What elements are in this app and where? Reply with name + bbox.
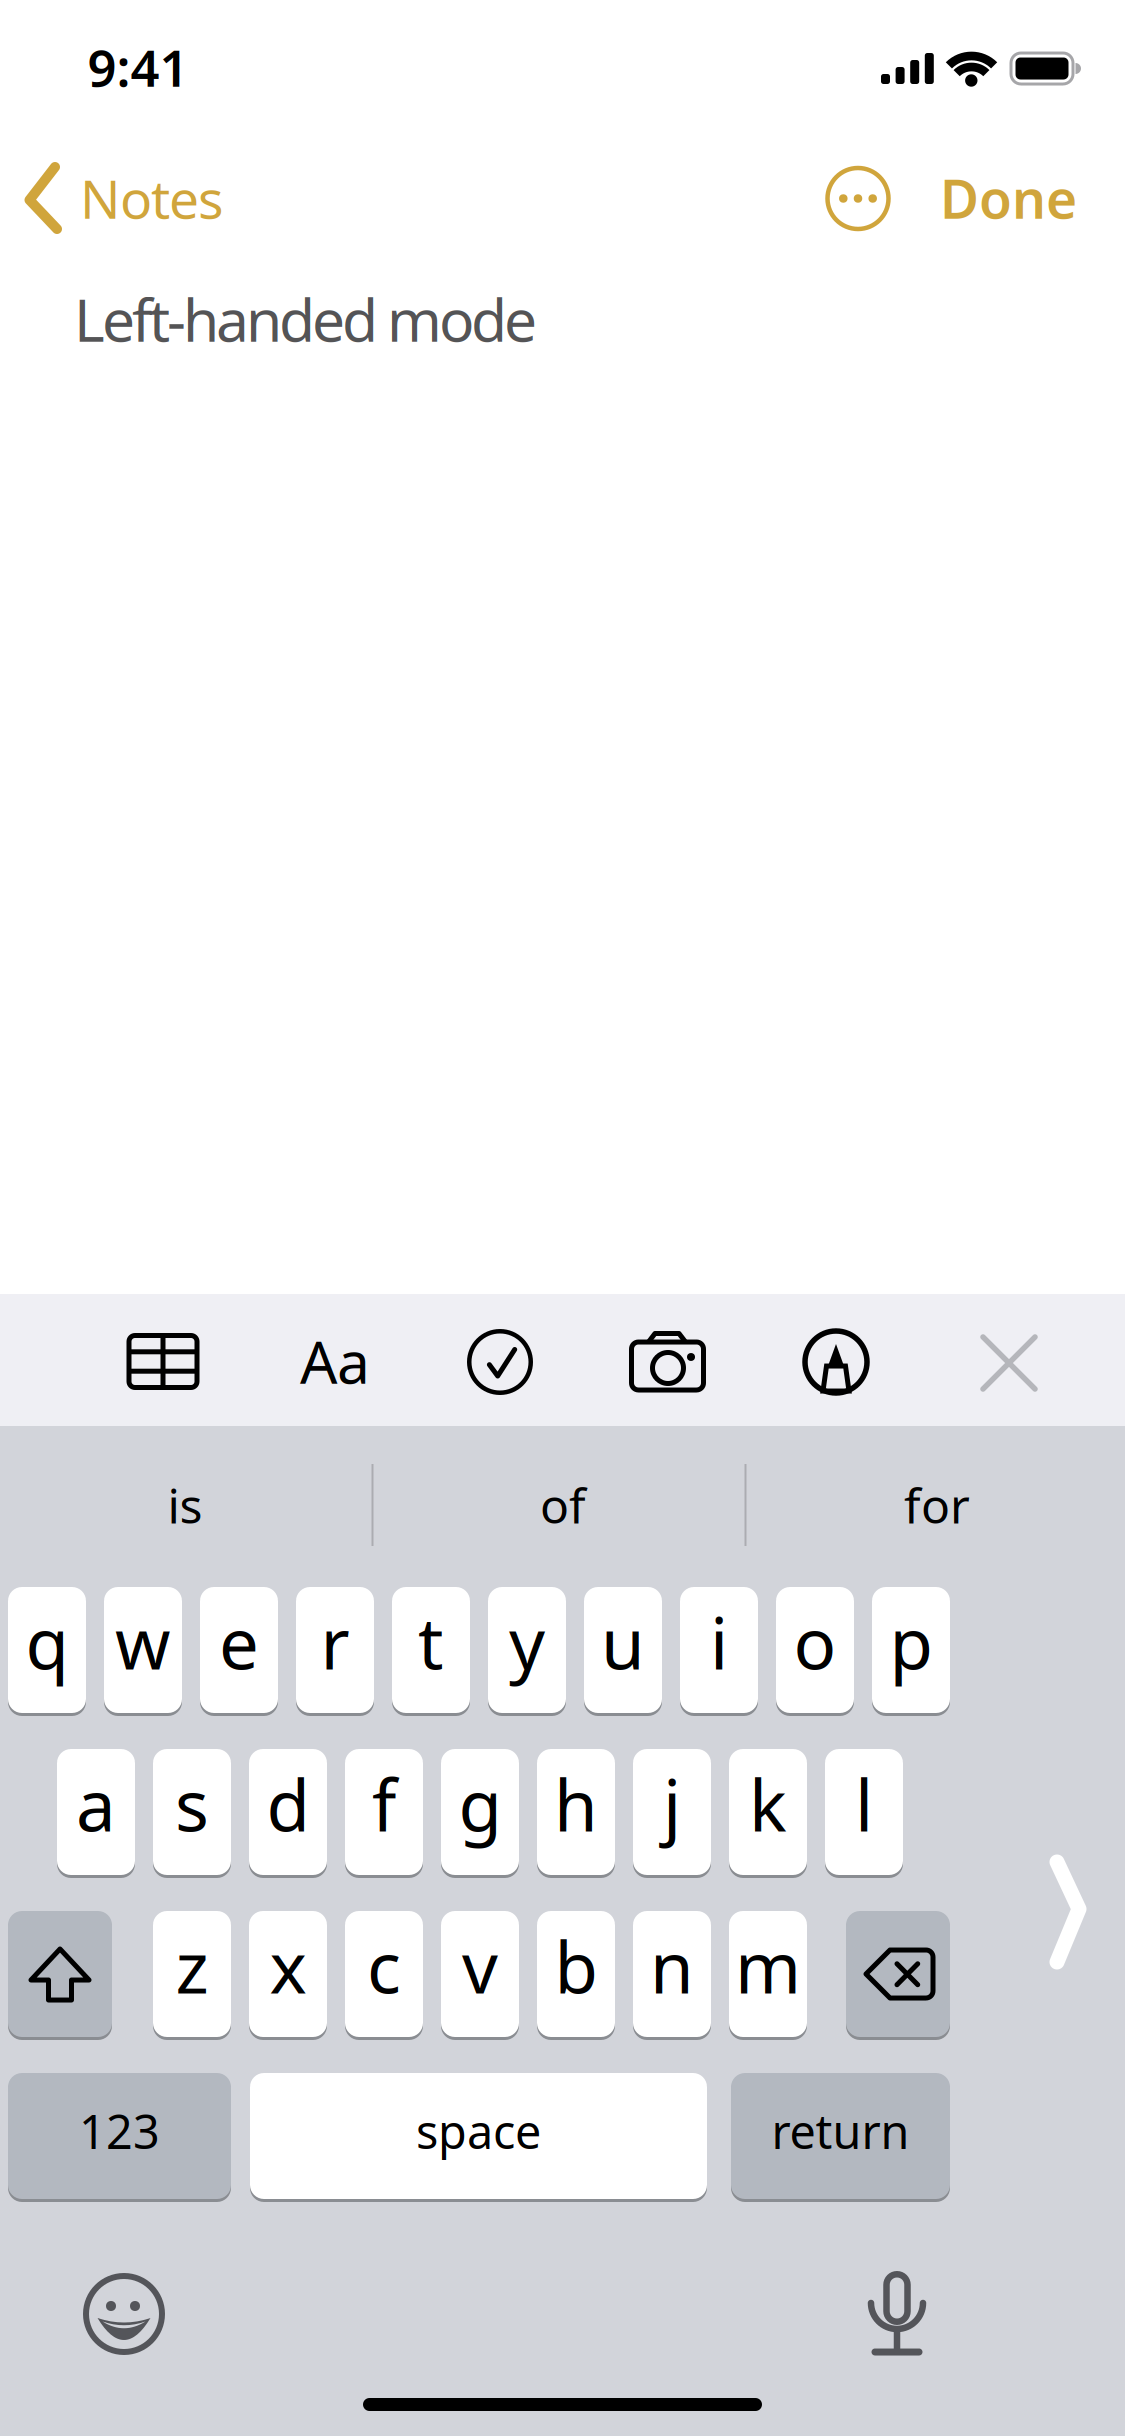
staticText: d [266, 1757, 309, 1851]
button[interactable] [622, 1327, 712, 1397]
staticText: a [76, 1757, 116, 1851]
button[interactable]: n [633, 1909, 711, 2039]
button[interactable]: d [249, 1747, 327, 1877]
button[interactable]: of [378, 1445, 748, 1565]
staticText: v [462, 1919, 498, 2013]
button[interactable]: e [200, 1585, 278, 1715]
button[interactable]: t [392, 1585, 470, 1715]
staticText: Aa [300, 1322, 370, 1400]
staticText: y [509, 1595, 545, 1689]
button[interactable]: w [104, 1585, 182, 1715]
staticText: of [540, 1473, 586, 1537]
staticText: b [554, 1919, 597, 2013]
button[interactable]: space [250, 2071, 707, 2201]
button[interactable]: is [0, 1445, 370, 1565]
staticText: u [601, 1595, 645, 1689]
staticText: x [269, 1919, 306, 2013]
staticText: Notes [80, 163, 224, 233]
button[interactable]: g [441, 1747, 519, 1877]
button[interactable]: 123 [8, 2071, 231, 2201]
button[interactable] [978, 1332, 1040, 1394]
staticText: 123 [79, 2100, 160, 2162]
button[interactable] [801, 1327, 871, 1397]
button[interactable]: m [729, 1909, 807, 2039]
staticText: k [749, 1757, 787, 1851]
staticText: c [367, 1919, 401, 2013]
button[interactable]: p [872, 1585, 950, 1715]
button[interactable]: o [776, 1585, 854, 1715]
button[interactable]: f [345, 1747, 423, 1877]
button[interactable] [8, 1909, 112, 2039]
button[interactable] [123, 1326, 203, 1396]
button[interactable]: k [729, 1747, 807, 1877]
staticText: w [115, 1595, 171, 1689]
staticText: for [904, 1473, 970, 1537]
button[interactable]: r [296, 1585, 374, 1715]
staticText: i [710, 1595, 728, 1689]
button[interactable]: a [57, 1747, 135, 1877]
staticText: space [416, 2100, 541, 2162]
button[interactable] [1049, 1859, 1087, 1965]
button[interactable]: return [731, 2071, 950, 2201]
staticText: l [855, 1757, 873, 1851]
button[interactable] [79, 2269, 169, 2359]
staticText: r [320, 1595, 349, 1689]
button[interactable]: j [633, 1747, 711, 1877]
staticText: z [175, 1919, 208, 2013]
staticText: p [889, 1595, 932, 1689]
button[interactable]: c [345, 1909, 423, 2039]
button[interactable]: v [441, 1909, 519, 2039]
staticText: t [418, 1595, 444, 1689]
staticText: q [25, 1595, 68, 1689]
button[interactable]: Aa [300, 1322, 370, 1400]
button[interactable]: y [488, 1585, 566, 1715]
staticText: e [219, 1595, 259, 1689]
staticText: is [167, 1473, 202, 1537]
staticText: h [554, 1757, 598, 1851]
button[interactable]: x [249, 1909, 327, 2039]
button[interactable]: b [537, 1909, 615, 2039]
staticText: j [663, 1757, 681, 1851]
staticText: f [372, 1757, 396, 1851]
staticText: return [771, 2100, 909, 2162]
staticText: Left-handed mode [74, 280, 537, 358]
staticText: o [793, 1595, 836, 1689]
staticText: m [735, 1919, 801, 2013]
button[interactable]: q [8, 1585, 86, 1715]
button[interactable]: u [584, 1585, 662, 1715]
button[interactable]: s [153, 1747, 231, 1877]
button[interactable]: i [680, 1585, 758, 1715]
staticText: n [650, 1919, 694, 2013]
staticText: Done [940, 163, 1077, 233]
button[interactable] [825, 165, 891, 231]
button[interactable] [846, 1909, 950, 2039]
button[interactable]: z [153, 1909, 231, 2039]
button[interactable]: Done [917, 163, 1077, 233]
button[interactable]: l [825, 1747, 903, 1877]
button[interactable]: h [537, 1747, 615, 1877]
staticText: 9:41 [87, 33, 188, 101]
staticText: g [458, 1757, 501, 1851]
button[interactable] [862, 2256, 932, 2356]
staticText: s [175, 1757, 209, 1851]
button[interactable] [465, 1327, 535, 1397]
button[interactable]: for [752, 1445, 1122, 1565]
button[interactable]: Notes [20, 153, 230, 243]
